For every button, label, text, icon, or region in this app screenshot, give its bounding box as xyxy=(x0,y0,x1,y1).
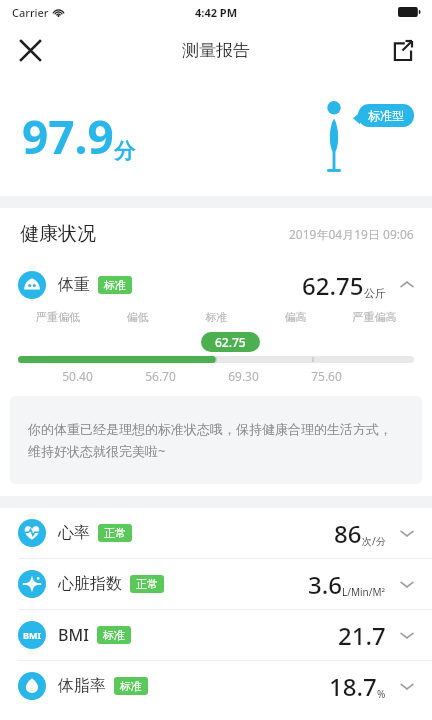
staticText: 86 xyxy=(334,517,362,550)
staticText: 标准 xyxy=(103,628,125,642)
staticText: L/Min/M² xyxy=(342,585,386,599)
staticText: 69.30 xyxy=(202,368,285,384)
staticText: 偏低 xyxy=(98,310,177,324)
staticText: 你的体重已经是理想的标准状态哦，保持健康合理的生活方式，维持好状态就很完美啦~ xyxy=(28,421,404,460)
staticText: 体重 xyxy=(58,275,90,295)
button[interactable]: 心率 xyxy=(0,508,432,558)
staticText: 公斤 xyxy=(364,286,386,300)
staticText: 标准 xyxy=(120,679,142,693)
staticText: 56.70 xyxy=(119,368,202,384)
staticText: 62.75 xyxy=(302,269,364,302)
staticText: 心脏指数 xyxy=(58,574,122,594)
staticText: 3.6 xyxy=(308,568,342,601)
button[interactable]: 体重 xyxy=(0,260,432,310)
staticText: 正常 xyxy=(136,577,158,591)
staticText: 标准 xyxy=(177,310,256,324)
staticText: 标准 xyxy=(104,278,126,292)
staticText: 分 xyxy=(114,138,135,164)
staticText: 62.75 xyxy=(215,334,246,350)
button[interactable]: BMI xyxy=(0,610,432,660)
staticText: 2019年04月19日 09:06 xyxy=(289,226,414,242)
button[interactable]: 体脂率 xyxy=(0,661,432,711)
staticText: 测量报告 xyxy=(182,40,250,61)
staticText: BMI xyxy=(58,624,89,646)
staticText: 97.9 xyxy=(22,105,114,168)
staticText: Carrier xyxy=(12,5,49,20)
staticText: % xyxy=(377,687,386,701)
button[interactable]: 心脏指数 xyxy=(0,559,432,609)
staticText: 严重偏高 xyxy=(335,310,414,324)
staticText: 心率 xyxy=(58,523,90,543)
staticText: BMI xyxy=(23,629,41,641)
button[interactable]: Close xyxy=(8,28,52,72)
staticText: 75.60 xyxy=(285,368,368,384)
staticText: 偏高 xyxy=(256,310,335,324)
staticText: 18.7 xyxy=(329,670,377,703)
staticText: 标准型 xyxy=(368,108,404,123)
staticText: 50.40 xyxy=(36,368,119,384)
staticText: 次/分 xyxy=(362,534,386,548)
staticText: 体脂率 xyxy=(58,676,106,696)
staticText: 严重偏低 xyxy=(18,310,98,324)
staticText: 正常 xyxy=(104,526,126,540)
staticText: 4:42 PM xyxy=(195,5,238,20)
staticText: 21.7 xyxy=(338,619,386,652)
staticText: 健康状况 xyxy=(20,222,96,246)
button[interactable]: Share xyxy=(380,28,424,72)
